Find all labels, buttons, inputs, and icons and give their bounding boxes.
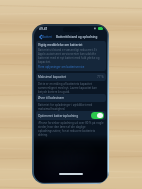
staticText: Dette er en måling af batteriets kapacit… — [38, 82, 104, 94]
button[interactable]: Flere oplysninger om batteriservice — [38, 65, 85, 69]
staticText: Maksimal kapacitet — [38, 75, 66, 79]
staticText: Optimeret batteriopladning — [38, 114, 79, 118]
staticText: 77 % — [97, 75, 104, 79]
staticText: Øvre til ladestrøm — [38, 96, 65, 100]
button[interactable]: Optimeret batteriopladning — [36, 111, 106, 120]
staticText: Vigtig meddelelse om batteriet — [38, 43, 83, 47]
button[interactable]: Maksimal kapacitet — [36, 73, 106, 81]
staticText: 09.41 — [39, 26, 48, 30]
button[interactable]: Back — [38, 35, 54, 39]
staticText: Batteri — [42, 35, 53, 39]
staticText: Batteritilstand og opladning — [56, 35, 98, 39]
staticText: Batteriet for opladninger i øjeblikket m… — [38, 103, 104, 111]
staticText: Batteriets tilstand er væsentligt reduce… — [38, 48, 104, 64]
staticText: iPhone forsinker opladning ud over 80 % … — [38, 121, 104, 137]
button[interactable]: Øvre til ladestrøm — [36, 94, 106, 102]
